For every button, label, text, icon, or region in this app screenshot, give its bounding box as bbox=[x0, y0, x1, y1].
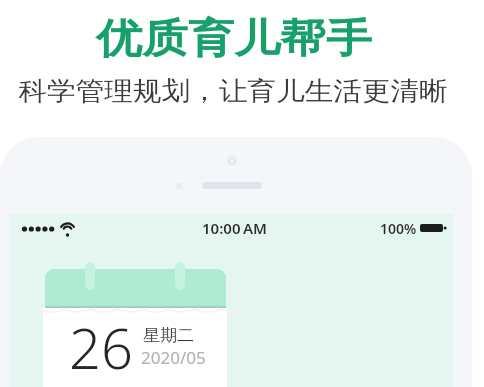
staticText: 科学管理规划，让育儿生活更清晰 bbox=[18, 75, 447, 108]
staticText: 2020/05 bbox=[141, 346, 206, 369]
other: Battery full bbox=[420, 224, 447, 233]
staticText: 优质育儿帮手 bbox=[96, 13, 372, 63]
other: Signal and Wi-Fi status bbox=[19, 217, 89, 241]
button[interactable]: 26 bbox=[43, 262, 243, 387]
staticText: 100% bbox=[380, 219, 417, 237]
staticText: 26 bbox=[69, 309, 133, 385]
staticText: 星期二 bbox=[143, 325, 194, 346]
staticText: 10:00 AM bbox=[202, 218, 267, 236]
